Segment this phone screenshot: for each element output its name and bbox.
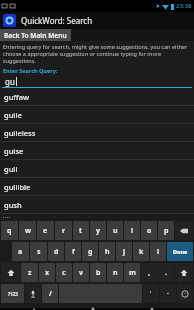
- staticText: p: [164, 226, 169, 236]
- staticText: gullible: [4, 182, 31, 192]
- staticText: v: [79, 268, 83, 278]
- staticText: x: [45, 268, 50, 278]
- staticText: g: [88, 247, 93, 257]
- button[interactable]: gu: [2, 76, 192, 88]
- staticText: s: [37, 247, 41, 257]
- staticText: m: [129, 268, 136, 278]
- button[interactable]: c: [56, 263, 72, 282]
- button[interactable]: /: [42, 284, 58, 303]
- staticText: a: [18, 247, 23, 257]
- staticText: guffaw: [4, 92, 30, 102]
- button[interactable]: o: [141, 221, 157, 240]
- staticText: guile: [4, 110, 22, 120]
- button[interactable]: Backspace: [175, 221, 193, 240]
- staticText: c: [62, 268, 66, 278]
- staticText: ,: [148, 268, 150, 278]
- staticText: z: [28, 268, 32, 278]
- staticText: Done: [173, 248, 188, 255]
- staticText: h: [105, 247, 110, 257]
- button[interactable]: y: [90, 221, 106, 240]
- staticText: n: [113, 268, 118, 278]
- button[interactable]: Voice input: [25, 284, 41, 303]
- staticText: l: [157, 247, 160, 257]
- staticText: k: [139, 247, 144, 257]
- staticText: Back To Main Menu: [4, 31, 67, 40]
- button[interactable]: e: [37, 221, 54, 240]
- button[interactable]: gullible: [0, 178, 194, 195]
- button[interactable]: d: [48, 242, 64, 261]
- staticText: w: [25, 226, 31, 236]
- button[interactable]: b: [90, 263, 106, 282]
- staticText: i: [131, 226, 134, 236]
- staticText: -: [167, 290, 169, 297]
- button[interactable]: m: [124, 263, 140, 282]
- button[interactable]: gull: [0, 160, 194, 177]
- button[interactable]: h: [99, 242, 115, 261]
- staticText: gull: [4, 164, 18, 174]
- staticText: q: [7, 226, 12, 236]
- staticText: d: [54, 247, 59, 257]
- staticText: r: [62, 226, 66, 236]
- button[interactable]: v: [73, 263, 89, 282]
- button[interactable]: g: [82, 242, 98, 261]
- button[interactable]: Emoji: [177, 284, 193, 303]
- button[interactable]: Back To Main Menu: [0, 29, 71, 41]
- staticText: .: [165, 268, 167, 278]
- button[interactable]: guile: [0, 106, 194, 123]
- button[interactable]: t: [73, 221, 89, 240]
- button[interactable]: Shift: [1, 263, 20, 282]
- staticText: e: [43, 226, 48, 236]
- button[interactable]: l: [150, 242, 166, 261]
- staticText: ': [150, 290, 152, 297]
- button[interactable]: gush: [0, 196, 194, 213]
- staticText: /: [49, 289, 52, 299]
- button[interactable]: ?123: [1, 284, 24, 303]
- staticText: QuickWord: Search: [21, 15, 93, 26]
- button[interactable]: Done: [167, 242, 193, 261]
- button[interactable]: Home: [76, 308, 118, 310]
- staticText: gush: [4, 200, 22, 210]
- button[interactable]: Shift: [175, 263, 193, 282]
- button[interactable]: u: [107, 221, 123, 240]
- button[interactable]: i: [124, 221, 140, 240]
- staticText: u: [113, 226, 118, 236]
- button[interactable]: s: [30, 242, 47, 261]
- button[interactable]: k: [133, 242, 149, 261]
- staticText: guise: [4, 146, 24, 156]
- button[interactable]: j: [116, 242, 132, 261]
- button[interactable]: Hide keyboard: [17, 308, 59, 310]
- button[interactable]: f: [65, 242, 81, 261]
- button[interactable]: n: [107, 263, 123, 282]
- staticText: ?123: [8, 291, 18, 297]
- button[interactable]: x: [39, 263, 55, 282]
- button[interactable]: -: [160, 284, 176, 303]
- button[interactable]: z: [21, 263, 38, 282]
- staticText: y: [96, 226, 100, 236]
- staticText: j: [123, 247, 126, 257]
- button[interactable]: p: [158, 221, 174, 240]
- button[interactable]: ,: [141, 263, 157, 282]
- staticText: guileless: [4, 128, 36, 138]
- button[interactable]: q: [1, 221, 18, 240]
- staticText: gu: [5, 76, 15, 87]
- staticText: f: [72, 247, 75, 257]
- button[interactable]: guffaw: [0, 88, 194, 105]
- button[interactable]: ': [143, 284, 159, 303]
- button[interactable]: .: [158, 263, 174, 282]
- button[interactable]: r: [55, 221, 72, 240]
- staticText: o: [147, 226, 152, 236]
- staticText: Entering query for search, might give so…: [3, 43, 192, 64]
- button[interactable]: Recent apps: [135, 308, 177, 310]
- button[interactable]: guise: [0, 142, 194, 159]
- staticText: t: [79, 226, 83, 236]
- staticText: 23:38: [176, 2, 192, 10]
- button[interactable]: guileless: [0, 124, 194, 141]
- staticText: Enter Search Query:: [3, 67, 58, 74]
- staticText: b: [96, 268, 101, 278]
- button[interactable]: w: [19, 221, 36, 240]
- button[interactable]: a: [12, 242, 29, 261]
